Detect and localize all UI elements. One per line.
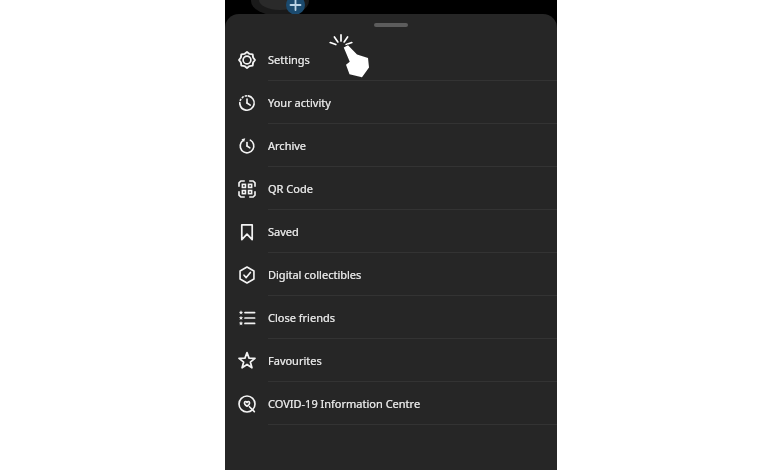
other: Tap pointer	[326, 33, 376, 81]
button[interactable]: Close friends	[225, 296, 557, 339]
staticText: Saved	[268, 224, 299, 239]
staticText: COVID-19 Information Centre	[268, 396, 421, 411]
button[interactable]: QR Code	[225, 167, 557, 210]
staticText: Favourites	[268, 353, 322, 368]
button[interactable]: COVID-19 Information Centre	[225, 382, 557, 425]
staticText: QR Code	[268, 181, 313, 196]
button[interactable]: Settings	[225, 38, 557, 81]
staticText: Your activity	[268, 95, 331, 110]
button[interactable]: Your activity	[225, 81, 557, 124]
button[interactable]: Favourites	[225, 339, 557, 382]
button[interactable]: Digital collectibles	[225, 253, 557, 296]
button[interactable]: Saved	[225, 210, 557, 253]
staticText: Digital collectibles	[268, 267, 362, 282]
button[interactable]: Archive	[225, 124, 557, 167]
staticText: Close friends	[268, 310, 335, 325]
staticText: Archive	[268, 138, 307, 153]
staticText: Settings	[268, 52, 310, 67]
